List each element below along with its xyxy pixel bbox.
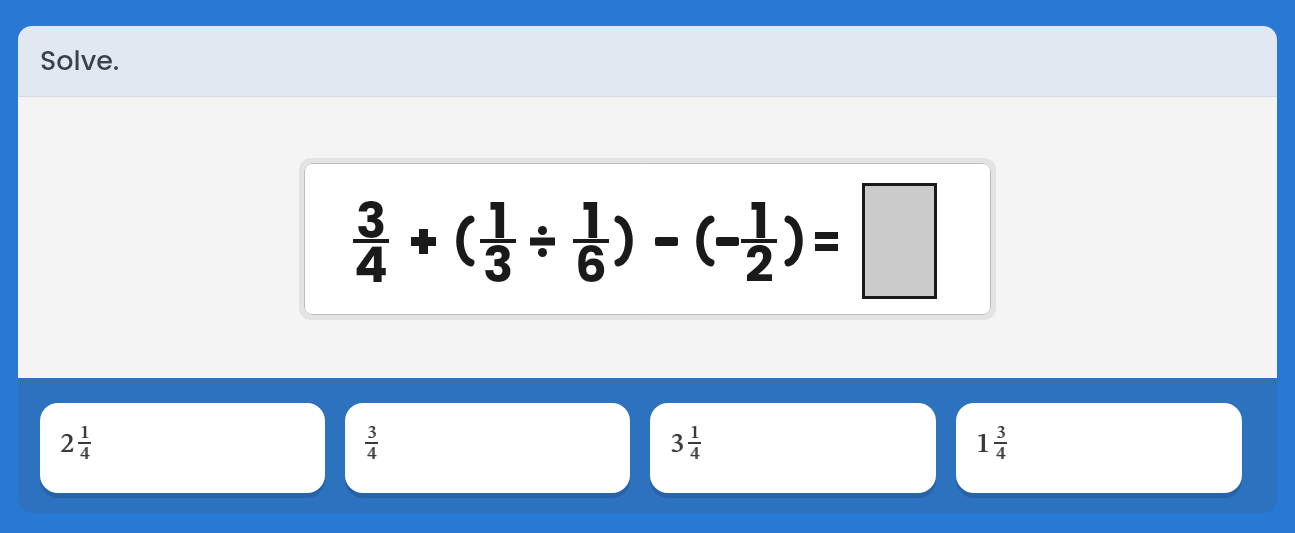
staticText: 3 <box>483 230 514 270</box>
staticText: 4 <box>368 445 377 458</box>
button[interactable]: 2 <box>40 403 325 493</box>
staticText: 1 <box>582 186 601 226</box>
staticText: 4 <box>80 445 89 458</box>
staticText: 1 <box>750 186 769 226</box>
staticText: 2 <box>61 431 75 457</box>
staticText: 1 <box>976 431 990 457</box>
staticText: 3 <box>997 424 1006 437</box>
staticText: 4 <box>367 445 376 458</box>
staticText: 1 <box>691 424 700 437</box>
staticText: 3 <box>670 431 684 457</box>
staticText: 1 <box>81 424 90 437</box>
staticText: 1 <box>690 424 699 437</box>
staticText: 4 <box>996 445 1005 458</box>
staticText: 2 <box>745 230 774 270</box>
button[interactable]: 1 <box>956 403 1242 493</box>
staticText: 3 <box>368 424 377 437</box>
staticText: 4 <box>81 445 90 458</box>
staticText: 4 <box>690 445 699 458</box>
staticText: 4 <box>354 230 388 270</box>
staticText: 1 <box>977 431 991 457</box>
button[interactable]: 3 <box>345 403 630 493</box>
staticText: 3 <box>996 424 1005 437</box>
staticText: 4 <box>997 445 1006 458</box>
staticText: 1 <box>80 424 89 437</box>
staticText: 3 <box>671 431 685 457</box>
staticText: Solve. <box>40 42 120 80</box>
button[interactable]: 3 <box>650 403 936 493</box>
staticText: 6 <box>575 230 607 270</box>
staticText: 2 <box>60 431 74 457</box>
staticText: 3 <box>367 424 376 437</box>
staticText: 1 <box>489 186 508 226</box>
staticText: 4 <box>691 445 700 458</box>
staticText: 3 <box>356 186 387 226</box>
